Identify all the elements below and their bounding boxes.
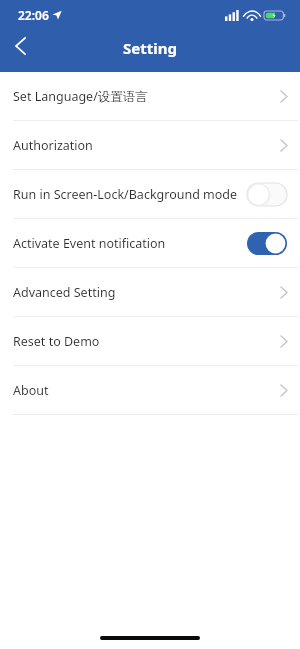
staticText: About xyxy=(13,382,269,399)
button[interactable]: About xyxy=(0,366,300,414)
button[interactable]: Authorization xyxy=(0,121,300,169)
button[interactable]: Toggle off xyxy=(247,183,287,206)
staticText: Set Language/设置语言 xyxy=(13,88,269,105)
staticText: Authorization xyxy=(13,137,269,154)
button[interactable]: Activate Event notification xyxy=(0,219,300,267)
button[interactable]: Reset to Demo xyxy=(0,317,300,365)
staticText: Setting xyxy=(0,38,300,58)
button[interactable]: Advanced Setting xyxy=(0,268,300,316)
staticText: Run in Screen-Lock/Background mode xyxy=(13,186,243,203)
button[interactable]: Toggle on xyxy=(247,232,287,255)
staticText: Advanced Setting xyxy=(13,284,269,301)
button[interactable]: Set Language/设置语言 xyxy=(0,72,300,120)
button[interactable]: Back xyxy=(0,26,40,66)
staticText: Activate Event notification xyxy=(13,235,243,252)
button[interactable]: Run in Screen-Lock/Background mode xyxy=(0,170,300,218)
staticText: 22:06 xyxy=(18,7,49,23)
staticText: Reset to Demo xyxy=(13,333,269,350)
